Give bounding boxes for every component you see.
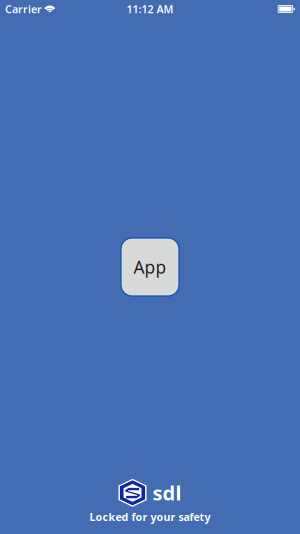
staticText: App (133, 255, 166, 278)
staticText: 11:12 AM (126, 2, 173, 16)
staticText: Locked for your safety (89, 510, 210, 524)
staticText: sdl (152, 480, 181, 506)
button[interactable]: App (121, 238, 179, 296)
staticText: Carrier (5, 2, 42, 16)
